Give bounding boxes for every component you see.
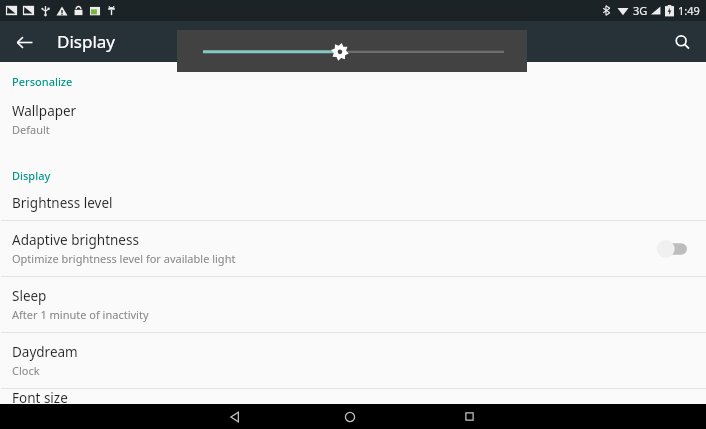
staticText: Personalize [12,74,73,89]
staticText: Wallpaper [12,102,77,120]
button[interactable]: Sleep [0,277,706,332]
staticText: Optimize brightness level for available … [12,251,236,266]
button[interactable]: Adaptive brightness [0,221,706,276]
staticText: Adaptive brightness [12,231,139,249]
staticText: Display [57,30,115,53]
button[interactable]: Back [218,404,252,429]
staticText: 3G [633,3,648,18]
button[interactable]: Font size [0,389,706,404]
button[interactable]: Home [333,404,367,429]
button[interactable]: Brightness slider [177,30,527,72]
staticText: Font size [12,389,68,404]
staticText: Display [12,168,51,183]
button[interactable]: Brightness level [0,186,706,220]
staticText: After 1 minute of inactivity [12,307,149,322]
button[interactable]: Recent apps [452,404,486,429]
button[interactable]: Back [6,24,42,60]
staticText: Default [12,122,50,137]
staticText: Brightness level [12,194,113,212]
button[interactable]: Search [664,24,700,60]
button[interactable]: Adaptive brightness toggle [654,234,694,264]
staticText: Clock [12,363,40,378]
button[interactable]: Daydream [0,333,706,388]
staticText: Daydream [12,343,78,361]
staticText: Sleep [12,287,47,305]
staticText: 1:49 [678,3,700,18]
button[interactable]: Wallpaper [0,92,706,147]
